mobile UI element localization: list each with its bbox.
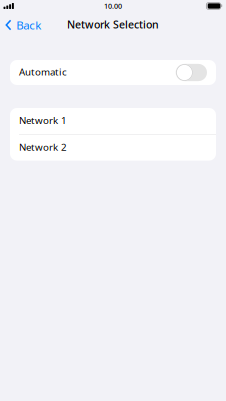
staticText: Network 2 (19, 140, 67, 153)
staticText: Network 1 (19, 114, 67, 127)
button[interactable]: Network 2 (10, 135, 216, 161)
staticText: Network Selection (67, 17, 159, 32)
staticText: 10.00 (104, 1, 122, 11)
button[interactable]: Automatic network selection (176, 64, 207, 81)
staticText: Back (16, 17, 41, 33)
button[interactable]: Back (0, 14, 47, 36)
button[interactable]: Network 1 (10, 108, 216, 134)
staticText: Automatic (19, 65, 67, 78)
